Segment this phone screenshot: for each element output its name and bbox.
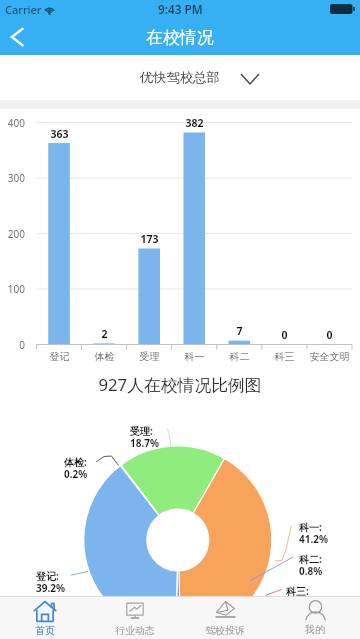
staticText: 927人在校情况比例图 (0, 373, 360, 396)
staticText: 400 (0, 116, 25, 130)
staticText: 9:43 PM (158, 1, 203, 17)
staticText: 登记 (37, 350, 82, 363)
staticText: 我的 (305, 623, 325, 636)
staticText: 科二 (217, 350, 262, 363)
staticText: 100 (0, 282, 25, 296)
button[interactable]: 首页 (0, 597, 90, 639)
staticText: 驾校投诉 (205, 624, 245, 637)
staticText: 体检: (64, 455, 87, 469)
staticText: Carrier (5, 2, 42, 17)
staticText: 39.2% (36, 581, 65, 595)
staticText: 行业动态 (115, 624, 155, 637)
staticText: 200 (0, 227, 25, 241)
staticText: 300 (0, 171, 25, 185)
button[interactable]: 优快驾校总部 (0, 55, 360, 100)
button[interactable]: Back (0, 18, 40, 55)
staticText: 0 (262, 328, 307, 342)
staticText: 科一 (172, 350, 217, 363)
staticText: 363 (37, 127, 82, 141)
staticText: 科三: (286, 584, 309, 598)
staticText: 7 (217, 324, 262, 338)
staticText: 安全文明 (307, 350, 352, 363)
staticText: 0.8% (299, 564, 323, 578)
staticText: 首页 (35, 624, 55, 637)
staticText: 0 (0, 338, 25, 352)
staticText: 173 (127, 232, 172, 246)
staticText: 科三 (262, 350, 307, 363)
staticText: 科二: (299, 552, 322, 566)
staticText: 科一: (299, 520, 322, 534)
staticText: 在校情况 (146, 27, 214, 48)
button[interactable]: 我的 (270, 597, 360, 639)
staticText: 0 (307, 328, 352, 342)
staticText: 受理 (127, 350, 172, 363)
staticText: 体检 (82, 350, 127, 363)
staticText: 382 (172, 116, 217, 130)
button[interactable]: 行业动态 (90, 597, 180, 639)
button[interactable]: 驾校投诉 (180, 597, 270, 639)
staticText: 18.7% (130, 436, 159, 450)
staticText: 优快驾校总部 (140, 69, 220, 86)
staticText: 2 (82, 327, 127, 341)
staticText: 0.2% (64, 467, 88, 481)
staticText: 41.2% (299, 532, 328, 546)
staticText: 受理: (130, 424, 153, 438)
staticText: 登记: (36, 569, 59, 583)
